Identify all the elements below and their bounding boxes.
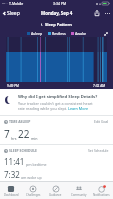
staticText: Community: [71, 193, 87, 197]
staticText: am woke up: [21, 175, 42, 180]
button[interactable]: Notifications: [90, 182, 113, 199]
staticText: Guidance: [49, 193, 62, 197]
button[interactable]: Community: [67, 182, 90, 199]
staticText: 7: [4, 127, 10, 141]
staticText: 3:34 PM: [53, 1, 67, 6]
staticText: 9:49 PM: [7, 84, 19, 88]
staticText: Sleep Pattern: [45, 22, 72, 27]
button[interactable]: Challenges: [22, 182, 44, 199]
staticText: Notifications: [93, 193, 110, 197]
staticText: 11:41: [4, 156, 25, 167]
button[interactable]: Edit Goal: [94, 119, 109, 124]
staticText: min: [31, 136, 38, 141]
staticText: Awake: [75, 31, 87, 36]
staticText: Why did I get simplified Sleep Details?: [18, 94, 98, 100]
staticText: Asleep: [31, 31, 43, 36]
staticText: Restless: [52, 31, 66, 36]
staticText: 7:32: [4, 169, 20, 180]
staticText: 22: [18, 127, 30, 141]
staticText: Monday, Sep 4: [41, 10, 73, 16]
button[interactable]: Guidance: [44, 182, 67, 199]
staticText: hrs: [11, 136, 17, 141]
button[interactable]: Sleep: [0, 7, 22, 19]
staticText: Challenges: [26, 193, 41, 197]
staticText: TIME ASLEEP: [9, 119, 31, 124]
staticText: Sleep: [7, 10, 20, 17]
staticText: SLEEP SCHEDULE: [9, 148, 37, 153]
button[interactable]: More options: [102, 7, 113, 19]
staticText: pm bedtime: [26, 162, 47, 167]
staticText: Your tracker couldn't get a consistent h…: [18, 101, 93, 111]
button[interactable]: Dashboard: [0, 182, 22, 199]
staticText: T-Mobile: [9, 1, 24, 6]
staticText: 7:32 AM: [93, 84, 106, 88]
button[interactable]: Expand chart: [103, 31, 109, 37]
staticText: Dashboard: [4, 193, 19, 197]
button[interactable]: Share: [92, 7, 102, 19]
button[interactable]: Set Schedule: [88, 148, 109, 153]
